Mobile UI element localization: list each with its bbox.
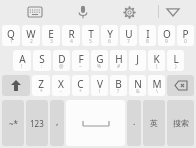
staticText: G	[96, 52, 104, 66]
staticText: S	[39, 52, 45, 66]
staticText: Z	[38, 77, 44, 91]
staticText: )	[175, 63, 177, 70]
staticText: L	[173, 52, 179, 66]
button[interactable]: L	[167, 50, 184, 71]
button[interactable]: Voice input	[72, 2, 94, 22]
button[interactable]: Settings	[118, 2, 140, 22]
staticText: O	[163, 27, 171, 41]
staticText: +	[79, 88, 82, 95]
staticText: X	[58, 77, 64, 91]
staticText: B	[115, 77, 122, 91]
staticText: \	[156, 88, 158, 95]
staticText: F	[78, 52, 84, 66]
staticText: A	[19, 52, 26, 66]
button[interactable]: U	[120, 25, 137, 46]
button[interactable]: ~*	[2, 100, 24, 146]
staticText: :	[41, 63, 43, 70]
staticText: C	[77, 77, 84, 91]
button[interactable]: 英	[143, 100, 165, 146]
staticText: Q	[7, 27, 15, 41]
button[interactable]: C	[72, 75, 89, 96]
staticText: @	[59, 63, 64, 70]
button[interactable]: H	[110, 50, 127, 71]
button[interactable]: A	[13, 50, 31, 71]
button[interactable]: T	[82, 25, 99, 46]
staticText: 7	[127, 38, 130, 45]
staticText: &	[136, 88, 140, 95]
button[interactable]: Space	[66, 100, 125, 146]
staticText: 4	[70, 38, 73, 45]
staticText: 8	[146, 38, 149, 45]
staticText: W	[26, 27, 36, 41]
button[interactable]: .	[127, 100, 141, 146]
button[interactable]: G	[91, 50, 108, 71]
staticText: J	[136, 52, 139, 66]
staticText: P	[182, 27, 189, 41]
button[interactable]: O	[158, 25, 175, 46]
staticText: ~*	[9, 118, 18, 129]
button[interactable]: P	[177, 25, 194, 46]
button[interactable]: ,	[50, 100, 64, 146]
staticText: M	[152, 77, 162, 91]
button[interactable]: J	[129, 50, 146, 71]
staticText: R	[68, 27, 75, 41]
button[interactable]: N	[129, 75, 146, 96]
staticText: "	[136, 63, 139, 70]
staticText: 3	[50, 38, 53, 45]
staticText: %	[97, 63, 102, 70]
staticText: 搜索	[173, 118, 189, 128]
staticText: !	[99, 88, 101, 95]
button[interactable]: I	[139, 25, 156, 46]
staticText: 5	[89, 38, 92, 45]
staticText: !	[21, 63, 23, 70]
staticText: 2	[30, 38, 33, 45]
staticText: H	[115, 52, 123, 66]
staticText: Y	[107, 27, 113, 41]
staticText: 123	[30, 118, 44, 129]
button[interactable]: Q	[2, 25, 20, 46]
staticText: *	[40, 88, 43, 95]
staticText: D	[58, 52, 66, 66]
staticText: ?	[117, 88, 120, 95]
button[interactable]: E	[42, 25, 60, 46]
button[interactable]: W	[22, 25, 40, 46]
staticText: E	[48, 27, 54, 41]
staticText: N	[134, 77, 142, 91]
staticText: I	[146, 27, 150, 41]
staticText: ~	[79, 63, 82, 70]
staticText: 0	[184, 38, 187, 45]
button[interactable]: F	[72, 50, 89, 71]
button[interactable]: K	[148, 50, 165, 71]
staticText: T	[88, 27, 94, 41]
button[interactable]: Y	[101, 25, 118, 46]
button[interactable]: B	[110, 75, 127, 96]
staticText: (	[156, 63, 158, 70]
button[interactable]: M	[148, 75, 165, 96]
staticText: 9	[165, 38, 168, 45]
button[interactable]: 123	[26, 100, 48, 146]
button[interactable]: D	[53, 50, 70, 71]
button[interactable]: V	[91, 75, 108, 96]
staticText: U	[125, 27, 133, 41]
staticText: K	[153, 52, 160, 66]
button[interactable]: 搜索	[167, 100, 194, 146]
staticText: #	[117, 63, 121, 70]
button[interactable]: Keyboard layout	[24, 2, 46, 22]
button[interactable]: S	[33, 50, 51, 71]
staticText: 英	[150, 118, 158, 128]
staticText: ,	[56, 115, 59, 127]
button[interactable]: Z	[32, 75, 50, 96]
button[interactable]: R	[62, 25, 80, 46]
staticText: 6	[108, 38, 111, 45]
staticText: -	[60, 88, 62, 95]
staticText: 1	[10, 38, 13, 45]
staticText: V	[97, 77, 103, 91]
button[interactable]: Hide keyboard	[162, 2, 184, 22]
button[interactable]: Shift	[2, 75, 30, 96]
button[interactable]: Backspace	[167, 75, 194, 96]
button[interactable]: X	[52, 75, 70, 96]
staticText: .	[133, 115, 136, 127]
